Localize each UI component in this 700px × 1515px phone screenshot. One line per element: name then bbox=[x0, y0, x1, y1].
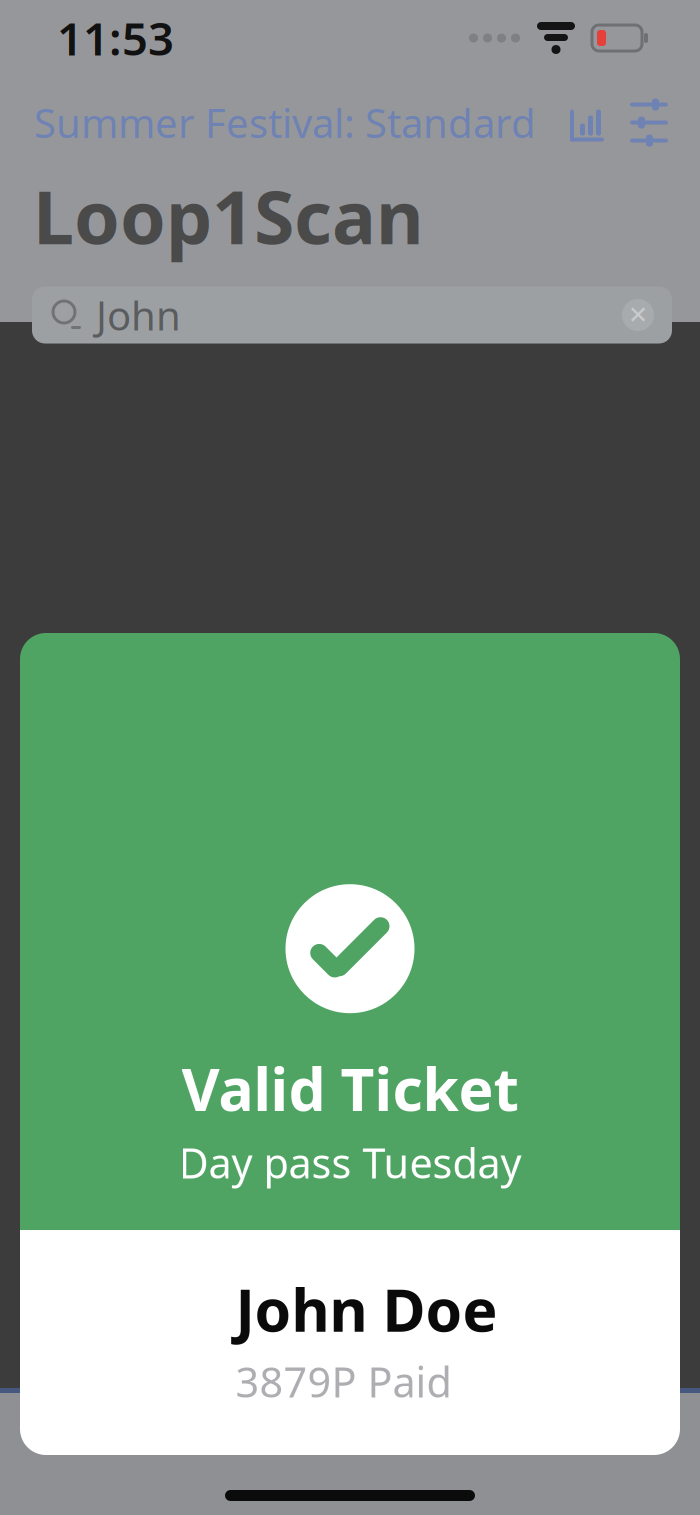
staticText: 3879P Paid bbox=[235, 1354, 451, 1409]
staticText: ✕ bbox=[628, 301, 648, 329]
staticText: Valid Ticket bbox=[181, 1049, 518, 1127]
staticText: John bbox=[96, 288, 181, 341]
staticText: Day pass Tuesday bbox=[178, 1135, 521, 1190]
staticText: Summer Festival: Standard bbox=[34, 96, 536, 149]
button[interactable]: Filters bbox=[628, 102, 670, 144]
button[interactable]: Statistics bbox=[570, 102, 612, 144]
staticText: 11:53 bbox=[57, 8, 174, 68]
button[interactable]: John bbox=[32, 286, 672, 343]
staticText: Loop1Scan bbox=[33, 167, 424, 264]
button[interactable]: Summer Festival: Standard bbox=[34, 96, 536, 149]
staticText: John Doe bbox=[235, 1270, 497, 1348]
